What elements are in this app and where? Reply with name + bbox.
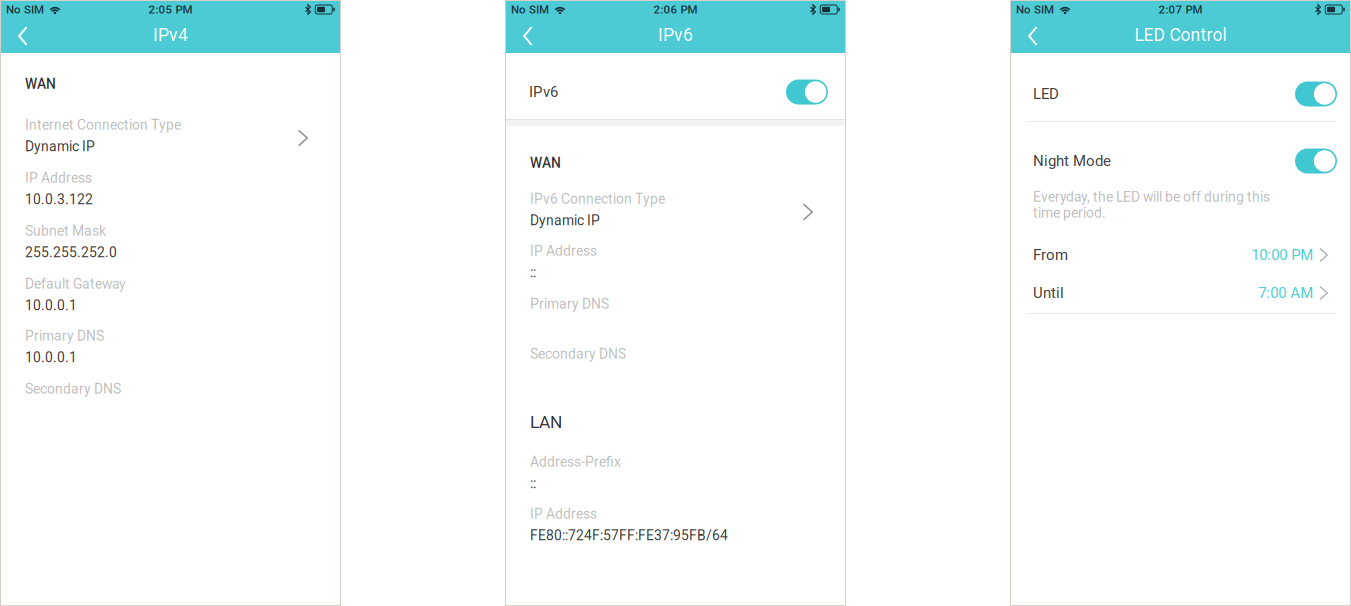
staticText: :: (530, 264, 536, 281)
button[interactable]: IPv6 (505, 59, 846, 125)
staticText: 10:00 PM (1251, 246, 1313, 264)
staticText: From (1033, 246, 1068, 264)
button[interactable]: Address-Prefix (505, 455, 846, 501)
staticText: 2:05 PM (148, 3, 192, 16)
staticText: Everyday, the LED will be off during thi… (1033, 189, 1270, 205)
button[interactable]: Primary DNS (0, 329, 341, 375)
button[interactable]: From (1010, 238, 1351, 272)
staticText: WAN (25, 76, 56, 92)
staticText: 10.0.0.1 (25, 349, 77, 366)
staticText: IP Address (530, 243, 597, 259)
staticText: No SIM (1016, 3, 1054, 16)
staticText: :: (530, 475, 536, 492)
staticText: Secondary DNS (530, 346, 626, 362)
button[interactable]: Back (0, 19, 44, 53)
staticText: Primary DNS (25, 328, 104, 344)
button[interactable]: Internet Connection Type (0, 118, 341, 164)
staticText: Subnet Mask (25, 223, 106, 239)
staticText: 10.0.3.122 (25, 191, 93, 208)
staticText: Internet Connection Type (25, 117, 181, 133)
staticText: IP Address (530, 506, 597, 522)
button[interactable]: LED (1010, 61, 1351, 127)
staticText: IPv6 Connection Type (530, 191, 665, 207)
button[interactable]: Subnet Mask (0, 224, 341, 270)
staticText: LAN (530, 412, 562, 432)
staticText: Default Gateway (25, 276, 126, 292)
staticText: Until (1033, 284, 1064, 302)
staticText: 7:00 AM (1258, 284, 1313, 302)
staticText: WAN (530, 155, 561, 171)
staticText: Dynamic IP (25, 138, 95, 155)
button[interactable]: IP Address (505, 507, 846, 553)
staticText: IPv6 (529, 83, 558, 101)
staticText: LED Control (1134, 25, 1226, 45)
staticText: 255.255.252.0 (25, 244, 117, 261)
button[interactable]: Back (1010, 19, 1054, 53)
button[interactable]: IPv6 Connection Type (505, 192, 846, 238)
staticText: LED (1033, 85, 1059, 103)
staticText: FE80::724F:57FF:FE37:95FB/64 (530, 527, 728, 544)
staticText: Night Mode (1033, 152, 1111, 170)
button[interactable]: Until (1010, 276, 1351, 310)
staticText: IPv4 (153, 25, 188, 45)
staticText: Secondary DNS (25, 381, 121, 397)
staticText: No SIM (511, 3, 549, 16)
staticText: Primary DNS (530, 296, 609, 312)
button[interactable]: Back (505, 19, 549, 53)
staticText: time period. (1033, 205, 1106, 221)
staticText: 10.0.0.1 (25, 297, 77, 314)
staticText: Dynamic IP (530, 212, 600, 229)
button[interactable]: IP Address (505, 244, 846, 290)
staticText: IP Address (25, 170, 92, 186)
staticText: 2:06 PM (653, 3, 697, 16)
button[interactable]: IP Address (0, 171, 341, 217)
staticText: IPv6 (658, 25, 693, 45)
staticText: 2:07 PM (1158, 3, 1202, 16)
button[interactable]: Default Gateway (0, 277, 341, 323)
button[interactable]: Night Mode (1010, 128, 1351, 194)
staticText: No SIM (6, 3, 44, 16)
staticText: Address-Prefix (530, 454, 621, 470)
